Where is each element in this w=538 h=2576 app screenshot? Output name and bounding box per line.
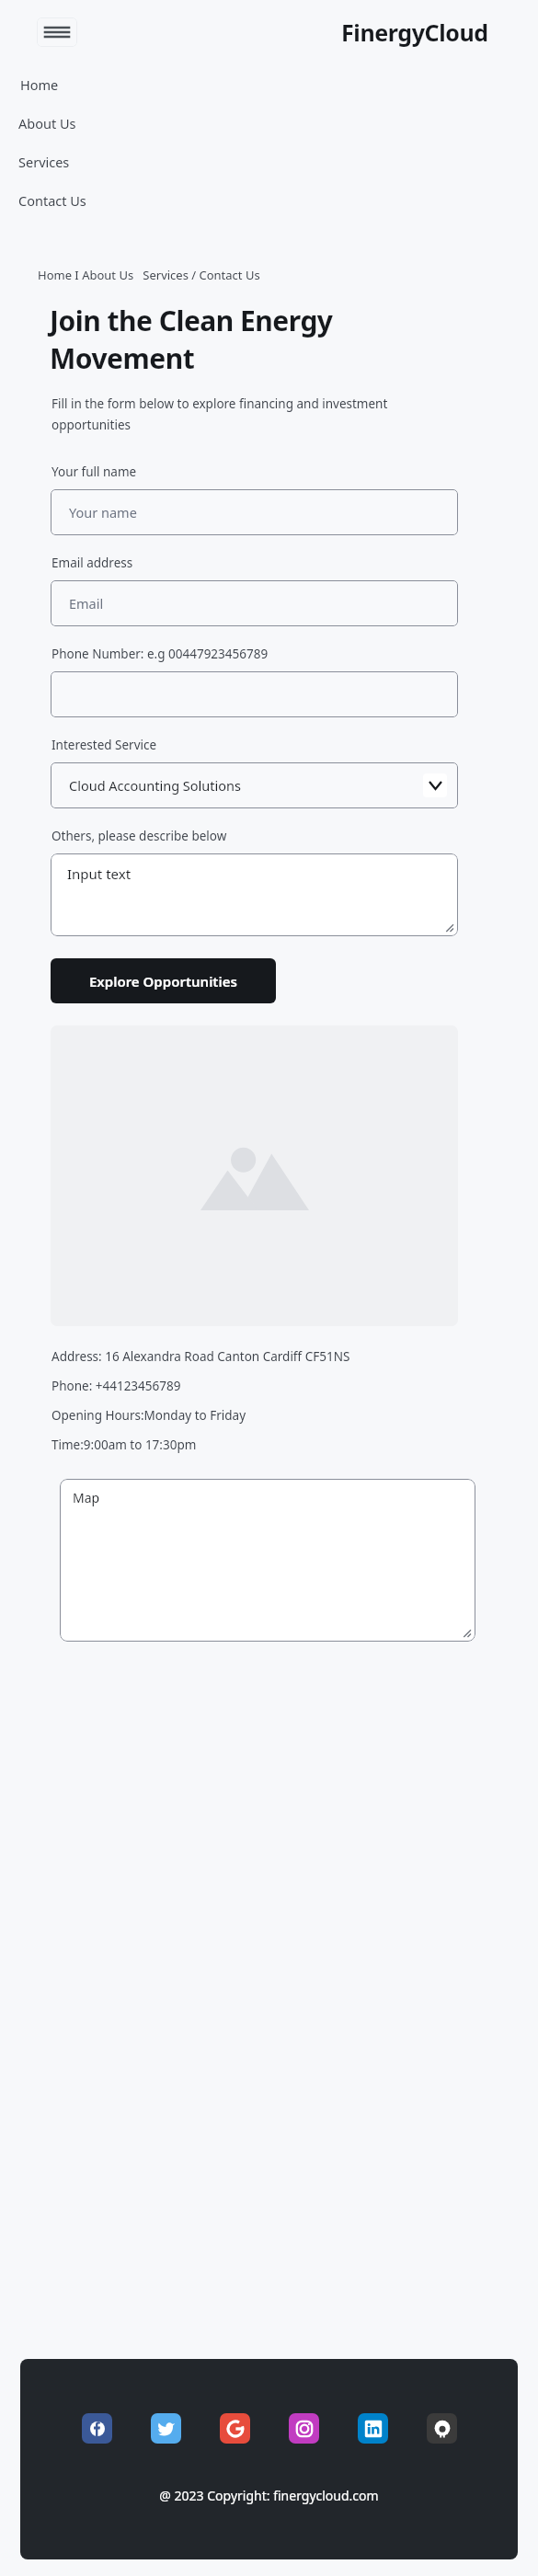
- button[interactable]: Open menu: [37, 17, 77, 47]
- staticText: Services: [18, 153, 70, 171]
- button[interactable]: Explore Opportunities: [51, 958, 276, 1003]
- staticText: Opening Hours:Monday to Friday: [52, 1407, 246, 1424]
- staticText: Your full name: [52, 464, 137, 480]
- button[interactable]: Input text: [51, 853, 458, 936]
- staticText: Phone Number: e.g 00447923456789: [52, 646, 269, 662]
- staticText: Others, please describe below: [52, 828, 227, 844]
- button[interactable]: About Us: [0, 112, 538, 134]
- staticText: @ 2023 Copyright: finergycloud.com: [159, 2487, 379, 2504]
- staticText: Explore Opportunities: [89, 972, 237, 990]
- button[interactable]: Contact Us: [0, 189, 538, 212]
- button[interactable]: Google: [220, 2413, 250, 2444]
- button[interactable]: GitHub: [427, 2413, 457, 2444]
- button[interactable]: [51, 671, 458, 717]
- staticText: Join the Clean Energy Movement: [50, 302, 483, 377]
- button[interactable]: Facebook: [82, 2413, 112, 2444]
- staticText: Map: [73, 1489, 100, 1506]
- staticText: Interested Service: [52, 737, 157, 753]
- staticText: Your name: [69, 503, 137, 521]
- button[interactable]: Email: [51, 580, 458, 626]
- staticText: Home: [20, 75, 59, 94]
- staticText: Time:9:00am to 17:30pm: [52, 1437, 197, 1453]
- staticText: Fill in the form below to explore financ…: [52, 395, 464, 433]
- button[interactable]: Cloud Accounting Solutions: [51, 762, 458, 808]
- button[interactable]: Map: [60, 1479, 475, 1642]
- button[interactable]: Twitter: [151, 2413, 181, 2444]
- button[interactable]: Your name: [51, 489, 458, 535]
- staticText: Email: [69, 594, 104, 613]
- button[interactable]: LinkedIn: [358, 2413, 388, 2444]
- staticText: Cloud Accounting Solutions: [69, 776, 241, 795]
- staticText: FinergyCloud: [341, 17, 488, 48]
- staticText: About Us: [18, 114, 76, 132]
- button[interactable]: Home: [0, 74, 538, 96]
- staticText: Address: 16 Alexandra Road Canton Cardif…: [52, 1348, 350, 1365]
- button[interactable]: Instagram: [289, 2413, 319, 2444]
- button[interactable]: Services: [0, 151, 538, 173]
- staticText: Phone: +44123456789: [52, 1378, 181, 1394]
- staticText: Input text: [67, 864, 132, 883]
- staticText: Email address: [52, 555, 133, 571]
- staticText: Home I About Us Services / Contact Us: [38, 267, 260, 283]
- staticText: Contact Us: [18, 191, 86, 210]
